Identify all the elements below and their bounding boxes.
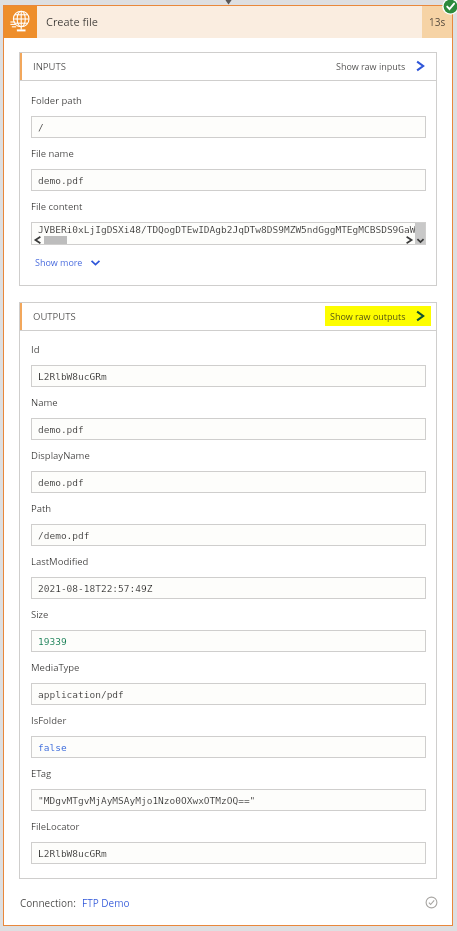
staticText: demo.pdf bbox=[38, 477, 84, 488]
staticText: LastModified bbox=[31, 555, 89, 568]
staticText: Show more bbox=[35, 256, 83, 268]
staticText: ETag bbox=[31, 767, 52, 780]
staticText: MediaType bbox=[31, 661, 80, 674]
staticText: L2RlbW8ucGRm bbox=[38, 371, 107, 382]
staticText: demo.pdf bbox=[38, 424, 84, 435]
staticText: Size bbox=[31, 608, 49, 621]
staticText: 19339 bbox=[38, 636, 67, 647]
button[interactable]: Succeeded bbox=[441, 0, 457, 20]
staticText: 2021-08-18T22:57:49Z bbox=[38, 583, 153, 594]
staticText: / bbox=[38, 122, 44, 133]
button[interactable]: Create file bbox=[3, 5, 453, 38]
staticText: Create file bbox=[46, 14, 98, 29]
staticText: demo.pdf bbox=[38, 175, 84, 186]
button[interactable]: OUTPUTS bbox=[19, 302, 437, 330]
staticText: /demo.pdf bbox=[38, 530, 90, 541]
staticText: JVBERi0xLjIgDSXi48/TDQogDTEwIDAgb2JqDTw8… bbox=[38, 224, 426, 235]
staticText: application/pdf bbox=[38, 689, 124, 700]
staticText: Folder path bbox=[31, 94, 82, 107]
staticText: Show raw outputs bbox=[330, 310, 406, 322]
staticText: File content bbox=[31, 200, 83, 213]
staticText: Path bbox=[31, 502, 52, 515]
staticText: Show raw inputs bbox=[336, 60, 406, 72]
staticText: 13s bbox=[429, 15, 446, 29]
staticText: L2RlbW8ucGRm bbox=[38, 848, 107, 859]
staticText: false bbox=[38, 742, 67, 753]
button[interactable]: Show more bbox=[35, 256, 101, 268]
button[interactable]: FTP Demo bbox=[82, 896, 130, 910]
staticText: DisplayName bbox=[31, 449, 90, 462]
staticText: INPUTS bbox=[33, 60, 66, 73]
button[interactable]: Connection valid bbox=[425, 896, 438, 909]
staticText: Connection: bbox=[20, 896, 76, 910]
staticText: Name bbox=[31, 396, 58, 409]
staticText: FileLocator bbox=[31, 820, 80, 833]
button[interactable]: INPUTS bbox=[19, 52, 437, 80]
staticText: Id bbox=[31, 343, 40, 356]
staticText: IsFolder bbox=[31, 714, 67, 727]
staticText: File name bbox=[31, 147, 74, 160]
staticText: "MDgvMTgvMjAyMSAyMjo1Nzo0OXwxOTMzOQ==" bbox=[38, 795, 256, 806]
staticText: OUTPUTS bbox=[33, 310, 76, 323]
